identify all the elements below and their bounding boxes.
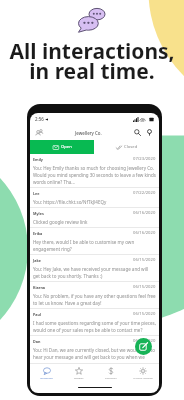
staticText: 06/14/2020 xyxy=(133,338,156,344)
staticText: Open xyxy=(61,144,72,150)
staticText: Lee xyxy=(33,191,40,196)
staticText: Paul xyxy=(33,312,41,317)
button[interactable]: Search xyxy=(132,127,143,138)
staticText: 06/15/2020 xyxy=(133,257,156,263)
staticText: Hey there, would I be able to customise … xyxy=(33,239,156,252)
button[interactable]: Erika xyxy=(30,228,159,254)
button[interactable]: Emily xyxy=(30,154,159,187)
staticText: 06/16/2020 xyxy=(133,210,156,216)
staticText: Emily xyxy=(33,157,43,162)
staticText: Jewellery Co. xyxy=(75,130,102,136)
staticText: Jake xyxy=(33,258,41,263)
staticText: Clicked google review link xyxy=(33,219,88,225)
staticText: I had some questions regarding some of y… xyxy=(33,320,156,333)
staticText: Kiarna xyxy=(33,285,46,290)
button[interactable]: Lee xyxy=(30,188,159,207)
staticText: Account Settings xyxy=(133,376,153,379)
button[interactable]: Open xyxy=(30,140,94,154)
button[interactable]: Contacts xyxy=(34,127,45,138)
button[interactable]: Closed xyxy=(94,140,159,154)
staticText: You: https://file.chkt.so/NfTkJl4EQy xyxy=(33,199,107,205)
staticText: You: Hey Jake, we have received your mes… xyxy=(33,266,156,279)
staticText: 2:56 xyxy=(35,116,44,122)
staticText: You: Hey Emily thanks so much for choosi… xyxy=(33,165,156,185)
staticText: All interactions, in real time. xyxy=(9,37,175,85)
button[interactable]: Payments xyxy=(95,364,127,382)
staticText: Dan xyxy=(33,339,41,344)
button[interactable]: Account Settings xyxy=(127,364,159,382)
button[interactable]: Kiarna xyxy=(30,282,159,308)
button[interactable]: Messenger xyxy=(30,364,63,382)
staticText: 06/15/2020 xyxy=(133,311,156,317)
button[interactable]: Reviews xyxy=(63,364,95,382)
staticText: 07/23/2020 xyxy=(133,156,156,162)
button[interactable]: Jake xyxy=(30,255,159,281)
staticText: You: No problem, if you have any other q… xyxy=(33,293,156,306)
button[interactable]: Location xyxy=(144,127,155,138)
button[interactable]: Paul xyxy=(30,309,159,335)
staticText: 06/16/2020 xyxy=(133,230,156,236)
staticText: Erika xyxy=(33,231,43,236)
staticText: 07/22/2020 xyxy=(133,190,156,196)
staticText: Myles xyxy=(33,211,44,216)
button[interactable]: Myles xyxy=(30,208,159,227)
staticText: Messenger xyxy=(40,376,54,379)
staticText: Reviews xyxy=(74,376,84,379)
staticText: Payments xyxy=(105,376,117,379)
staticText: Closed xyxy=(124,144,138,150)
button[interactable]: Dan xyxy=(30,336,159,363)
staticText: 06/15/2020 xyxy=(133,284,156,290)
button[interactable]: New message xyxy=(135,338,152,355)
staticText: You: Hi Dan, we are currently closed, bu… xyxy=(33,347,156,361)
